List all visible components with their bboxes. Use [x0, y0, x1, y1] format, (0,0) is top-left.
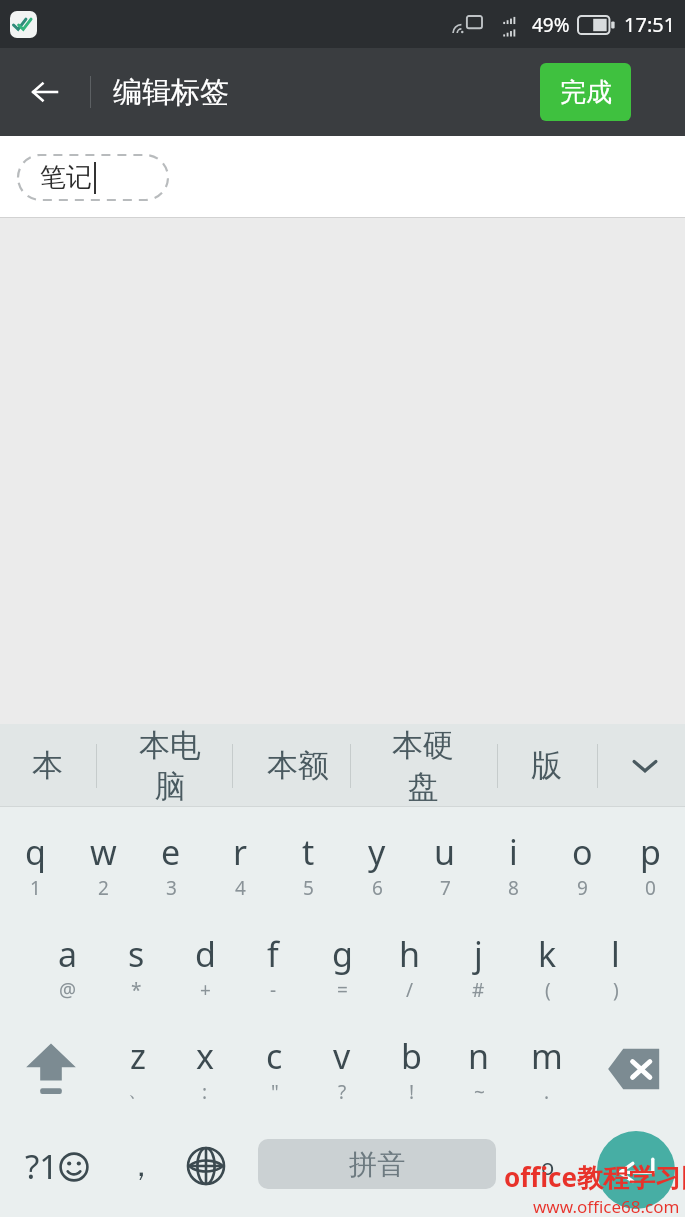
button[interactable]: o [520, 1121, 576, 1211]
staticText: w [90, 829, 117, 875]
button[interactable]: e [137, 815, 205, 915]
button[interactable]: 版 [500, 724, 592, 807]
staticText: 本硬盘 [377, 726, 469, 806]
staticText: f [267, 931, 279, 977]
staticText: 本 [32, 746, 63, 785]
staticText: u [434, 829, 456, 875]
staticText: * [131, 977, 142, 1003]
button[interactable]: k [513, 917, 581, 1017]
staticText: e [161, 829, 181, 875]
staticText: a [58, 931, 78, 977]
staticText: l [611, 931, 620, 977]
staticText: h [399, 931, 421, 977]
button[interactable]: q [1, 815, 69, 915]
button[interactable]: 完成 [540, 63, 631, 121]
staticText: n [468, 1033, 490, 1079]
button[interactable]: t [274, 815, 342, 915]
button[interactable]: c [240, 1019, 308, 1119]
staticText: x [196, 1033, 214, 1079]
button[interactable]: l [581, 917, 649, 1017]
button[interactable]: o [548, 815, 616, 915]
button[interactable]: Shift [8, 1019, 94, 1119]
staticText: + [200, 977, 211, 1003]
button[interactable]: 笔记 [17, 154, 169, 201]
button[interactable]: s [102, 917, 170, 1017]
staticText: z [130, 1033, 146, 1079]
staticText: t [302, 829, 315, 875]
button[interactable]: z [103, 1019, 171, 1119]
staticText: 拼音 [349, 1147, 405, 1182]
staticText: 编辑标签 [113, 74, 229, 111]
staticText: p [640, 829, 661, 875]
button[interactable]: 本电脑 [124, 724, 216, 807]
staticText: ?1 [25, 1144, 59, 1189]
staticText: 0 [645, 875, 656, 901]
staticText: q [25, 829, 46, 875]
button[interactable]: h [376, 917, 444, 1017]
button[interactable]: i [479, 815, 547, 915]
staticText: # [472, 977, 485, 1003]
button[interactable]: 本额 [252, 724, 344, 807]
staticText: d [195, 931, 216, 977]
staticText: " [271, 1079, 279, 1105]
button[interactable]: ， [105, 1121, 177, 1211]
staticText: ， [126, 1147, 156, 1185]
button[interactable]: 拼音 [258, 1139, 496, 1189]
staticText: 8 [508, 875, 519, 901]
button[interactable]: a [34, 917, 102, 1017]
button[interactable]: m [513, 1019, 581, 1119]
staticText: 17:51 [624, 11, 676, 38]
button[interactable]: p [616, 815, 684, 915]
button[interactable]: 本 [1, 724, 93, 807]
staticText: o [572, 829, 593, 875]
staticText: ~ [474, 1079, 485, 1105]
staticText: o [541, 1151, 555, 1181]
button[interactable]: r [206, 815, 274, 915]
button[interactable]: Enter [597, 1131, 675, 1209]
button[interactable]: n [445, 1019, 513, 1119]
button[interactable]: g [308, 917, 376, 1017]
staticText: s [128, 931, 145, 977]
button[interactable]: v [308, 1019, 376, 1119]
button[interactable]: Switch input language [170, 1121, 242, 1211]
staticText: 6 [372, 875, 383, 901]
button[interactable]: ?1 [2, 1121, 112, 1211]
staticText: r [233, 829, 248, 875]
staticText: j [474, 931, 483, 977]
staticText: 本额 [267, 746, 329, 785]
button[interactable]: b [377, 1019, 445, 1119]
staticText: ) [613, 977, 619, 1003]
staticText: 5 [303, 875, 314, 901]
staticText: v [333, 1033, 351, 1079]
staticText: c [266, 1033, 283, 1079]
button[interactable]: 本硬盘 [377, 724, 469, 807]
staticText: 完成 [560, 76, 612, 109]
staticText: 1 [30, 875, 41, 901]
staticText: m [531, 1033, 563, 1079]
staticText: office教程学习网 [504, 1159, 685, 1195]
staticText: . [544, 1079, 550, 1105]
button[interactable]: Back [12, 59, 78, 125]
staticText: 4 [235, 875, 246, 901]
button[interactable]: y [343, 815, 411, 915]
staticText: = [337, 977, 348, 1003]
staticText: 本电脑 [124, 726, 216, 806]
staticText: @ [59, 977, 77, 1003]
button[interactable]: w [69, 815, 137, 915]
button[interactable]: x [171, 1019, 239, 1119]
staticText: k [538, 931, 557, 977]
button[interactable]: j [444, 917, 512, 1017]
staticText: www.office68.com [533, 1195, 680, 1217]
staticText: 笔记 [40, 161, 92, 194]
staticText: : [202, 1079, 208, 1105]
button[interactable]: d [171, 917, 239, 1017]
button[interactable]: u [411, 815, 479, 915]
staticText: 7 [440, 875, 451, 901]
button[interactable]: f [239, 917, 307, 1017]
staticText: 9 [577, 875, 588, 901]
staticText: / [406, 977, 414, 1003]
staticText: ( [545, 977, 551, 1003]
staticText: 3 [166, 875, 177, 901]
button[interactable]: More candidates [610, 724, 680, 807]
button[interactable]: Backspace [592, 1019, 680, 1119]
